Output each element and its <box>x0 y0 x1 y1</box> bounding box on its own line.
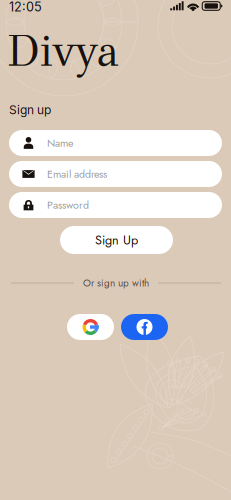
staticText: Divya <box>7 24 119 78</box>
button[interactable]: Sign up with Facebook <box>121 314 168 340</box>
staticText: Name <box>47 135 73 151</box>
staticText: Email address <box>47 166 107 182</box>
button[interactable]: Sign Up <box>60 226 173 254</box>
staticText: Sign up <box>9 103 51 117</box>
staticText: 12:05 <box>9 0 42 15</box>
staticText: Password <box>47 197 89 213</box>
button[interactable]: Name <box>9 130 222 156</box>
button[interactable]: Email address <box>9 161 222 187</box>
staticText: Or sign up with <box>83 276 149 290</box>
staticText: Sign Up <box>95 231 138 249</box>
button[interactable]: Sign up with Google <box>67 314 114 340</box>
button[interactable]: Password <box>9 192 222 218</box>
